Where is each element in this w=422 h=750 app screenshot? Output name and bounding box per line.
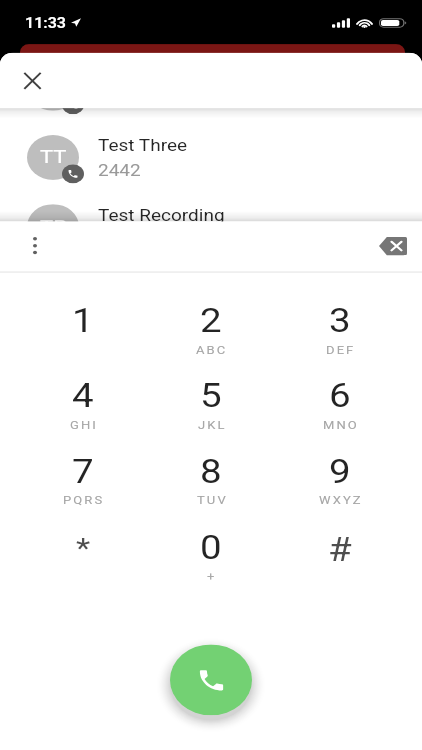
staticText: GHI: [70, 419, 98, 432]
staticText: WXYZ: [319, 494, 363, 507]
button[interactable]: 5: [149, 369, 273, 440]
button[interactable]: 1: [21, 294, 145, 365]
button[interactable]: More options: [15, 226, 55, 266]
button[interactable]: 8: [149, 445, 273, 515]
staticText: *: [76, 531, 91, 565]
staticText: ABC: [196, 343, 228, 356]
button[interactable]: 7: [21, 445, 145, 515]
button[interactable]: 2: [149, 294, 273, 365]
staticText: 2442: [98, 160, 141, 179]
staticText: 6: [329, 376, 351, 415]
staticText: 1111: [98, 91, 141, 110]
staticText: TT: [40, 146, 67, 169]
button[interactable]: 4: [21, 369, 145, 440]
staticText: Test Three: [98, 136, 188, 155]
button[interactable]: Close: [12, 60, 52, 100]
staticText: JKL: [198, 419, 227, 432]
button[interactable]: #: [278, 521, 402, 592]
staticText: 5: [200, 376, 222, 415]
staticText: DEF: [326, 343, 356, 356]
staticText: MNO: [323, 419, 359, 432]
staticText: 9: [329, 451, 351, 490]
button[interactable]: 6: [278, 369, 402, 440]
staticText: 1: [72, 301, 94, 340]
staticText: 3: [329, 301, 351, 340]
button[interactable]: Call: [170, 644, 252, 715]
staticText: TUV: [197, 494, 228, 507]
button[interactable]: TT: [0, 123, 422, 192]
button[interactable]: *: [21, 521, 145, 592]
staticText: #: [328, 530, 352, 569]
button[interactable]: Backspace: [369, 222, 417, 269]
staticText: 7: [72, 451, 94, 490]
button[interactable]: T: [0, 54, 422, 123]
staticText: 0: [200, 528, 222, 567]
staticText: PQRS: [63, 494, 105, 507]
staticText: 4: [72, 376, 94, 415]
staticText: +: [207, 570, 217, 583]
staticText: TR: [40, 215, 67, 238]
staticText: 2: [200, 301, 222, 340]
staticText: 8: [200, 451, 222, 490]
button[interactable]: 0: [149, 521, 273, 592]
staticText: 11:33: [25, 15, 66, 31]
button[interactable]: 3: [278, 294, 402, 365]
button[interactable]: TR: [0, 192, 422, 261]
staticText: Test Recording: [98, 205, 225, 224]
button[interactable]: 9: [278, 445, 402, 515]
